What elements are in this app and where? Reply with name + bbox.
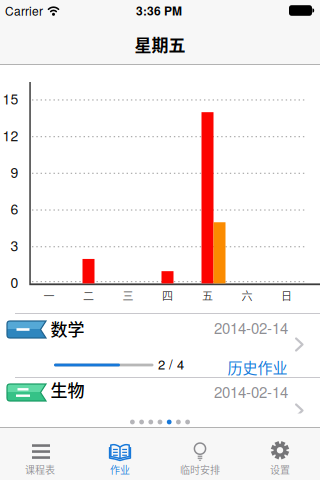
staticText: 四 [162, 287, 173, 303]
staticText: 15 [2, 88, 18, 108]
staticText: 生物 [50, 377, 84, 402]
staticText: 2014-02-14 [214, 381, 288, 402]
staticText: 历史作业 [227, 356, 287, 378]
button[interactable]: 课程表 [0, 427, 80, 480]
button[interactable]: 临时安排 [160, 427, 240, 480]
staticText: 数学 [50, 316, 84, 341]
staticText: 2 / 4 [158, 355, 184, 373]
button[interactable]: 作业 [80, 427, 160, 480]
staticText: 3:36 PM [136, 2, 182, 19]
staticText: 2014-02-14 [214, 317, 288, 338]
staticText: Carrier [5, 2, 43, 19]
button[interactable]: 设置 [240, 427, 320, 480]
staticText: 临时安排 [180, 462, 220, 477]
staticText: 3 [10, 235, 18, 255]
staticText: 二 [83, 287, 94, 303]
staticText: 0 [10, 272, 18, 292]
staticText: 12 [2, 125, 18, 145]
staticText: 6 [10, 198, 18, 218]
staticText: 三 [122, 287, 133, 303]
button[interactable]: 生物 [0, 378, 320, 442]
staticText: 设置 [270, 462, 290, 477]
staticText: 课程表 [25, 462, 55, 477]
staticText: 六 [241, 287, 252, 303]
button[interactable]: 数学 [0, 314, 320, 378]
staticText: 五 [202, 287, 213, 303]
staticText: 9 [10, 162, 18, 182]
staticText: 作业 [110, 462, 130, 477]
staticText: 一 [43, 287, 54, 303]
staticText: 日 [281, 287, 292, 303]
staticText: 星期五 [134, 32, 185, 56]
